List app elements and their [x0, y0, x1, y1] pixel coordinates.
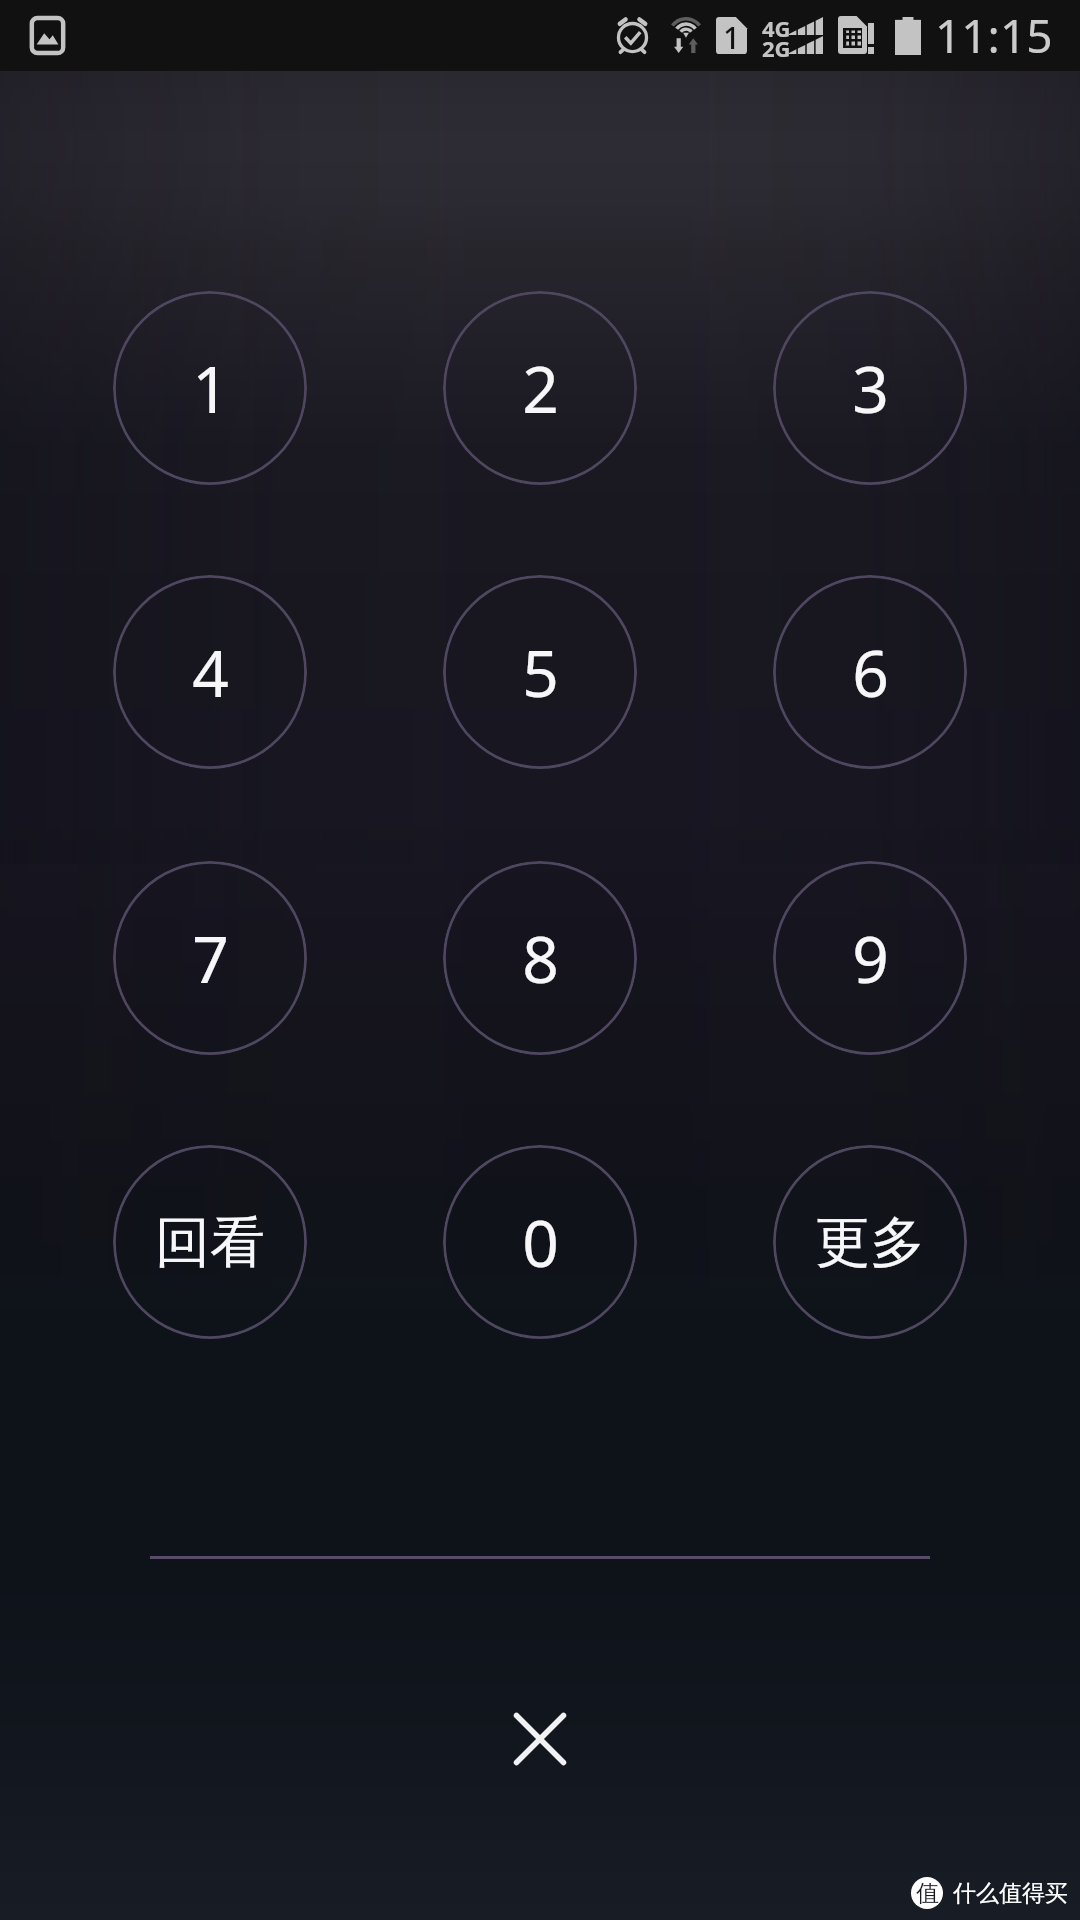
button[interactable]: 4 — [113, 575, 307, 769]
staticText: 4 — [192, 629, 229, 716]
button[interactable]: 2 — [443, 291, 637, 485]
button[interactable]: 9 — [773, 861, 967, 1055]
button[interactable]: 8 — [443, 861, 637, 1055]
other: Screenshot — [31, 17, 64, 54]
button[interactable]: 3 — [773, 291, 967, 485]
staticText: 什么值得买 — [953, 1879, 1068, 1908]
staticText: 更多 — [815, 1208, 925, 1277]
staticText: 2G — [762, 33, 791, 63]
staticText: 2 — [522, 345, 559, 432]
staticText: 1 — [723, 17, 741, 54]
staticText: 6 — [852, 629, 889, 716]
staticText: 0 — [522, 1199, 559, 1286]
staticText: 8 — [522, 915, 559, 1002]
staticText: 11:15 — [935, 4, 1053, 67]
button[interactable]: Close — [465, 1664, 615, 1814]
button[interactable]: 6 — [773, 575, 967, 769]
button[interactable]: 0 — [443, 1145, 637, 1339]
staticText: 5 — [522, 629, 559, 716]
staticText: 7 — [192, 915, 229, 1002]
button[interactable]: 更多 — [773, 1145, 967, 1339]
staticText: 4G — [762, 13, 791, 43]
button[interactable]: 1 — [113, 291, 307, 485]
staticText: 3 — [852, 345, 889, 432]
staticText: 值 — [916, 1879, 939, 1908]
staticText: 9 — [852, 915, 889, 1002]
staticText: 1 — [192, 345, 229, 432]
button[interactable]: 回看 — [113, 1145, 307, 1339]
button[interactable]: 7 — [113, 861, 307, 1055]
staticText: 回看 — [155, 1208, 265, 1277]
button[interactable]: 5 — [443, 575, 637, 769]
